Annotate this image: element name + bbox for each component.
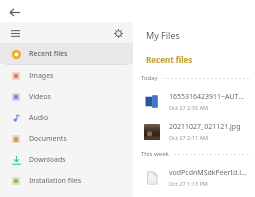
staticText: Oct 27 2:33 AM [169,104,208,111]
staticText: 1655316423911~AUTO.doc [169,92,249,102]
staticText: Documents [29,134,67,144]
staticText: Oct 27 1:13 PM [169,180,208,187]
button[interactable]: Back [5,3,23,21]
staticText: My Files [146,29,180,41]
button[interactable]: Downloads [0,149,133,170]
staticText: This week [141,150,169,158]
staticText: Oct 27 2:11 AM [169,134,208,141]
button[interactable]: Recent files [0,43,133,64]
staticText: Recent files [29,49,68,59]
button[interactable]: Documents [0,128,133,149]
staticText: 20211027_021121.jpg [169,122,241,132]
button[interactable]: vodPcdnMSdkPeerId.log [133,162,255,192]
button[interactable]: 20211027_021121.jpg [133,116,255,146]
staticText: Recent files [146,54,193,65]
button[interactable]: Videos [0,86,133,107]
button[interactable]: Installation files [0,170,133,191]
button[interactable]: Images [0,65,133,86]
button[interactable]: 1655316423911~AUTO.doc [133,86,255,116]
button[interactable]: Menu [8,26,22,40]
staticText: Videos [29,92,51,102]
staticText: Downloads [29,155,66,165]
button[interactable]: Audio [0,107,133,128]
staticText: vodPcdnMSdkPeerId.log [169,168,249,178]
staticText: Installation files [29,176,82,186]
staticText: Images [29,71,54,81]
button[interactable]: Settings [111,26,125,40]
staticText: Today [141,74,158,82]
staticText: Audio [29,113,49,123]
